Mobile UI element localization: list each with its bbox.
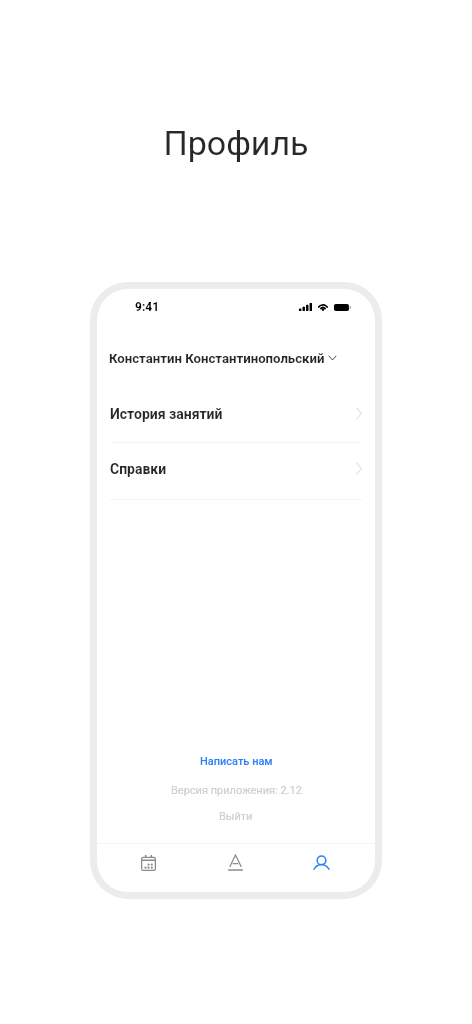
staticText: Справки: [110, 461, 167, 477]
button[interactable]: Расписание: [125, 840, 171, 886]
button[interactable]: Документы: [212, 840, 258, 886]
staticText: Написать нам: [200, 755, 273, 768]
button[interactable]: История занятий: [97, 385, 375, 443]
button[interactable]: Профиль: [298, 841, 344, 887]
button[interactable]: Справки: [97, 442, 375, 500]
button[interactable]: Выйти: [213, 808, 259, 825]
staticText: Выйти: [219, 810, 253, 823]
staticText: Константин Константинопольский: [109, 351, 325, 366]
staticText: 9:41: [135, 300, 160, 314]
button[interactable]: Написать нам: [194, 753, 279, 770]
button[interactable]: Константин Константинопольский: [97, 335, 375, 381]
staticText: История занятий: [110, 406, 223, 422]
staticText: Профиль: [0, 123, 472, 163]
staticText: Версия приложения: 2.12: [171, 784, 302, 797]
